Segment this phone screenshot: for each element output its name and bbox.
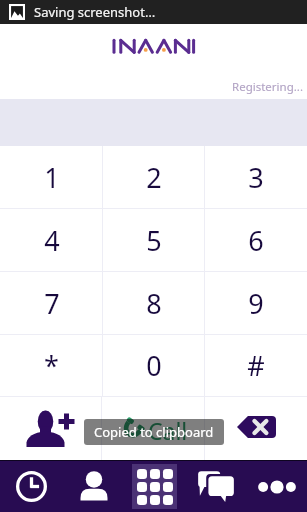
button[interactable]: 3 [205, 146, 307, 208]
staticText: 9 [248, 285, 264, 322]
staticText: Saving screenshot… [34, 3, 156, 21]
staticText: Registering... [232, 79, 303, 95]
button[interactable]: Backspace [205, 397, 307, 460]
button[interactable]: More [246, 460, 307, 512]
button[interactable]: Messages [185, 460, 246, 512]
button[interactable]: 1 [0, 146, 103, 208]
button[interactable]: Recents [0, 460, 62, 512]
button[interactable]: 7 [0, 272, 103, 334]
button[interactable]: 0 [103, 335, 205, 396]
button[interactable]: # [205, 335, 307, 396]
button[interactable]: Add contact [0, 397, 101, 460]
button[interactable]: 9 [205, 272, 307, 334]
staticText: 4 [44, 222, 60, 259]
button[interactable]: Dialpad [124, 460, 185, 512]
staticText: # [247, 347, 265, 384]
staticText: 5 [146, 222, 162, 259]
staticText: 8 [146, 285, 162, 322]
button[interactable]: 8 [103, 272, 205, 334]
button[interactable]: Contacts [62, 460, 124, 512]
staticText: Copied to clipboard [94, 423, 214, 441]
staticText: 6 [248, 222, 264, 259]
staticText: 0 [146, 347, 162, 384]
button[interactable]: 6 [205, 209, 307, 271]
staticText: 2 [146, 159, 162, 196]
staticText: Call [148, 415, 188, 446]
staticText: 3 [248, 159, 264, 196]
button[interactable]: 2 [103, 146, 205, 208]
staticText: 7 [44, 285, 60, 322]
staticText: 1 [44, 159, 60, 196]
staticText: * [44, 347, 59, 384]
button[interactable]: 4 [0, 209, 103, 271]
button[interactable]: Call [102, 397, 204, 460]
button[interactable]: * [0, 335, 103, 396]
button[interactable]: 5 [103, 209, 205, 271]
